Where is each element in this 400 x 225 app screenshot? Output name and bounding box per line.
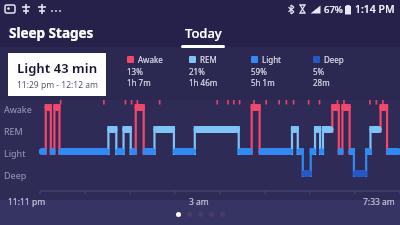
- button[interactable]: Sleep Stages: [9, 24, 94, 42]
- staticText: 11:29 pm - 12:12 am: [17, 79, 98, 91]
- button[interactable]: Deep: [313, 54, 375, 88]
- button[interactable]: Light: [251, 54, 313, 88]
- button[interactable]: Page 3: [198, 212, 203, 217]
- button[interactable]: Page 1: [176, 212, 181, 217]
- staticText: Today: [185, 24, 222, 42]
- button[interactable]: Page 2: [187, 212, 192, 217]
- staticText: 3 am: [189, 196, 209, 208]
- button[interactable]: Page 5: [220, 212, 225, 217]
- staticText: Awake: [138, 54, 163, 65]
- staticText: 1:14 PM: [355, 2, 395, 16]
- staticText: Light 43 min: [17, 59, 98, 77]
- staticText: 59%: [251, 66, 267, 77]
- staticText: 13%: [127, 66, 143, 77]
- staticText: Deep: [324, 54, 344, 65]
- staticText: 5h 1m: [251, 77, 275, 88]
- staticText: Light: [4, 147, 26, 159]
- staticText: Awake: [4, 103, 32, 115]
- staticText: 28m: [313, 77, 330, 88]
- staticText: 1h 46m: [189, 77, 218, 88]
- button[interactable]: Light 43 min: [8, 53, 106, 96]
- staticText: 67%: [324, 3, 343, 16]
- staticText: 5%: [313, 66, 325, 77]
- staticText: 11:11 pm: [8, 196, 46, 208]
- staticText: REM: [200, 54, 217, 65]
- staticText: 1h 7m: [127, 77, 151, 88]
- button[interactable]: Today: [181, 24, 225, 48]
- staticText: 21%: [189, 66, 205, 77]
- staticText: 7:33 am: [363, 196, 395, 208]
- staticText: Deep: [4, 169, 27, 181]
- button[interactable]: Page 4: [209, 212, 214, 217]
- staticText: REM: [4, 125, 23, 137]
- button[interactable]: Awake: [127, 54, 189, 88]
- button[interactable]: REM: [189, 54, 251, 88]
- staticText: Light: [262, 54, 282, 65]
